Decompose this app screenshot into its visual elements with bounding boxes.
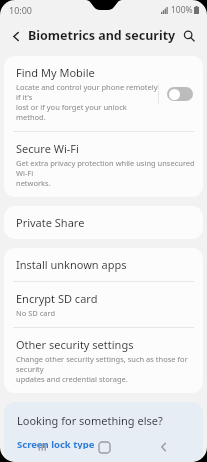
staticText: Biometrics and security <box>28 27 176 44</box>
button[interactable]: Find My Mobile toggle <box>167 87 193 101</box>
button[interactable]: Install unknown apps <box>4 248 203 281</box>
staticText: Private Share <box>16 215 85 230</box>
staticText: Other security settings <box>16 337 134 352</box>
button[interactable]: Other security settings <box>4 328 203 393</box>
button[interactable]: Encrypt SD card <box>4 282 203 327</box>
button[interactable]: Back <box>4 24 28 48</box>
staticText: Encrypt SD card <box>16 291 98 306</box>
button[interactable]: Private Share <box>4 206 203 239</box>
button[interactable]: Home <box>87 432 121 462</box>
staticText: Looking for something else? <box>17 413 163 428</box>
staticText: No SD card <box>16 308 56 318</box>
staticText: Find My Mobile <box>16 65 95 80</box>
button[interactable]: Back <box>147 432 181 462</box>
button[interactable]: Secure Wi-Fi <box>4 132 203 197</box>
staticText: Get extra privacy protection while using… <box>16 158 195 188</box>
button[interactable]: Find My Mobile <box>4 56 203 131</box>
button[interactable]: Screen lock type <box>17 438 190 449</box>
staticText: 100% <box>171 4 193 16</box>
button[interactable]: Recents <box>26 432 60 462</box>
staticText: 10:00 <box>9 4 33 16</box>
staticText: Screen lock type <box>17 438 95 449</box>
staticText: Change other security settings, such as … <box>16 354 195 384</box>
staticText: Secure Wi-Fi <box>16 141 79 156</box>
staticText: Install unknown apps <box>16 257 127 272</box>
staticText: Locate and control your phone remotely i… <box>16 82 158 122</box>
button[interactable]: Search <box>177 24 201 48</box>
